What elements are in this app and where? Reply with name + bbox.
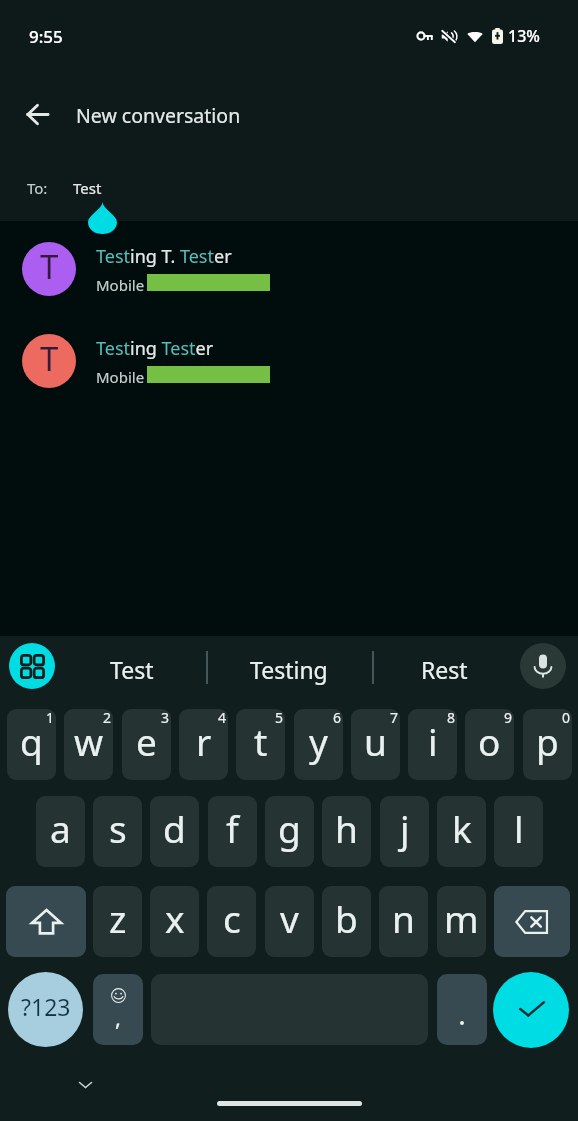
staticText: 9:55 — [29, 25, 63, 48]
staticText: 4 — [218, 709, 227, 727]
staticText: o — [478, 716, 501, 766]
button[interactable]: T — [0, 315, 578, 407]
button[interactable]: Open apps — [9, 643, 55, 689]
staticText: , — [115, 1002, 121, 1032]
button[interactable]: Test — [64, 642, 200, 696]
staticText: To: — [27, 178, 48, 198]
button[interactable]: i — [408, 709, 457, 780]
staticText: j — [400, 803, 410, 853]
staticText: b — [335, 893, 358, 943]
staticText: r — [196, 716, 212, 766]
button[interactable]: n — [379, 886, 428, 957]
staticText: 8 — [447, 709, 456, 727]
staticText: Testing — [250, 654, 328, 685]
button[interactable]: x — [150, 886, 199, 957]
button[interactable]: m — [437, 886, 486, 957]
button[interactable]: c — [207, 886, 256, 957]
staticText: 3 — [161, 709, 170, 727]
staticText: m — [444, 893, 479, 943]
button[interactable]: Period — [437, 974, 487, 1045]
button[interactable]: l — [494, 796, 543, 867]
button[interactable]: a — [36, 796, 85, 867]
staticText: i — [428, 716, 438, 766]
staticText: Testing Tester — [96, 336, 214, 361]
staticText: u — [364, 716, 387, 766]
staticText: 5 — [275, 709, 284, 727]
staticText: s — [109, 803, 127, 853]
staticText: v — [280, 893, 299, 943]
staticText: d — [163, 803, 186, 853]
button[interactable]: Shift — [6, 886, 86, 957]
button[interactable]: p — [523, 709, 572, 780]
button[interactable]: g — [265, 796, 314, 867]
staticText: Rest — [421, 654, 468, 685]
staticText: t — [254, 716, 268, 766]
staticText: g — [278, 803, 301, 853]
staticText: 1 — [46, 709, 55, 727]
staticText: l — [514, 803, 524, 853]
staticText: Test — [73, 178, 102, 198]
button[interactable]: v — [265, 886, 314, 957]
staticText: T — [40, 336, 59, 381]
staticText: 7 — [390, 709, 399, 727]
staticText: z — [109, 893, 127, 943]
staticText: x — [165, 893, 185, 943]
staticText: Mobile — [96, 275, 145, 295]
button[interactable]: ?123 — [8, 972, 83, 1047]
button[interactable]: u — [351, 709, 400, 780]
button[interactable]: t — [236, 709, 285, 780]
staticText: 6 — [333, 709, 342, 727]
button[interactable]: d — [150, 796, 199, 867]
button[interactable]: Emoji — [93, 974, 143, 1045]
staticText: 0 — [562, 709, 571, 727]
staticText: 2 — [103, 709, 112, 727]
button[interactable]: r — [179, 709, 228, 780]
button[interactable]: Hide keyboard — [67, 1067, 103, 1103]
staticText: 13% — [508, 25, 540, 47]
staticText: w — [74, 716, 104, 766]
button[interactable]: j — [380, 796, 429, 867]
button[interactable]: h — [322, 796, 371, 867]
button[interactable]: y — [294, 709, 343, 780]
staticText: e — [136, 716, 157, 766]
button[interactable]: b — [322, 886, 371, 957]
button[interactable]: Done — [493, 972, 569, 1048]
button[interactable]: o — [465, 709, 514, 780]
staticText: T — [40, 244, 59, 289]
staticText: h — [335, 803, 358, 853]
button[interactable]: s — [93, 796, 142, 867]
staticText: 9 — [504, 709, 513, 727]
button[interactable]: Backspace — [494, 886, 570, 957]
staticText: Testing T. Tester — [96, 244, 232, 269]
button[interactable]: k — [437, 796, 486, 867]
staticText: y — [309, 716, 328, 766]
button[interactable]: w — [64, 709, 113, 780]
staticText: k — [452, 803, 472, 853]
button[interactable]: T — [0, 223, 578, 315]
staticText: a — [50, 803, 71, 853]
button[interactable]: Rest — [374, 642, 515, 696]
staticText: c — [223, 893, 241, 943]
button[interactable]: Voice input — [520, 643, 566, 689]
staticText: n — [392, 893, 415, 943]
staticText: p — [536, 716, 559, 766]
staticText: New conversation — [76, 102, 241, 129]
button[interactable]: z — [93, 886, 142, 957]
staticText: f — [226, 803, 239, 853]
button[interactable]: f — [208, 796, 257, 867]
staticText: q — [20, 716, 43, 766]
button[interactable]: Back — [14, 91, 61, 138]
staticText: Mobile — [96, 367, 145, 387]
button[interactable]: e — [122, 709, 171, 780]
button[interactable]: Testing — [207, 642, 371, 696]
staticText: Test — [110, 654, 154, 685]
staticText: ?123 — [21, 991, 71, 1022]
button[interactable]: q — [7, 709, 56, 780]
